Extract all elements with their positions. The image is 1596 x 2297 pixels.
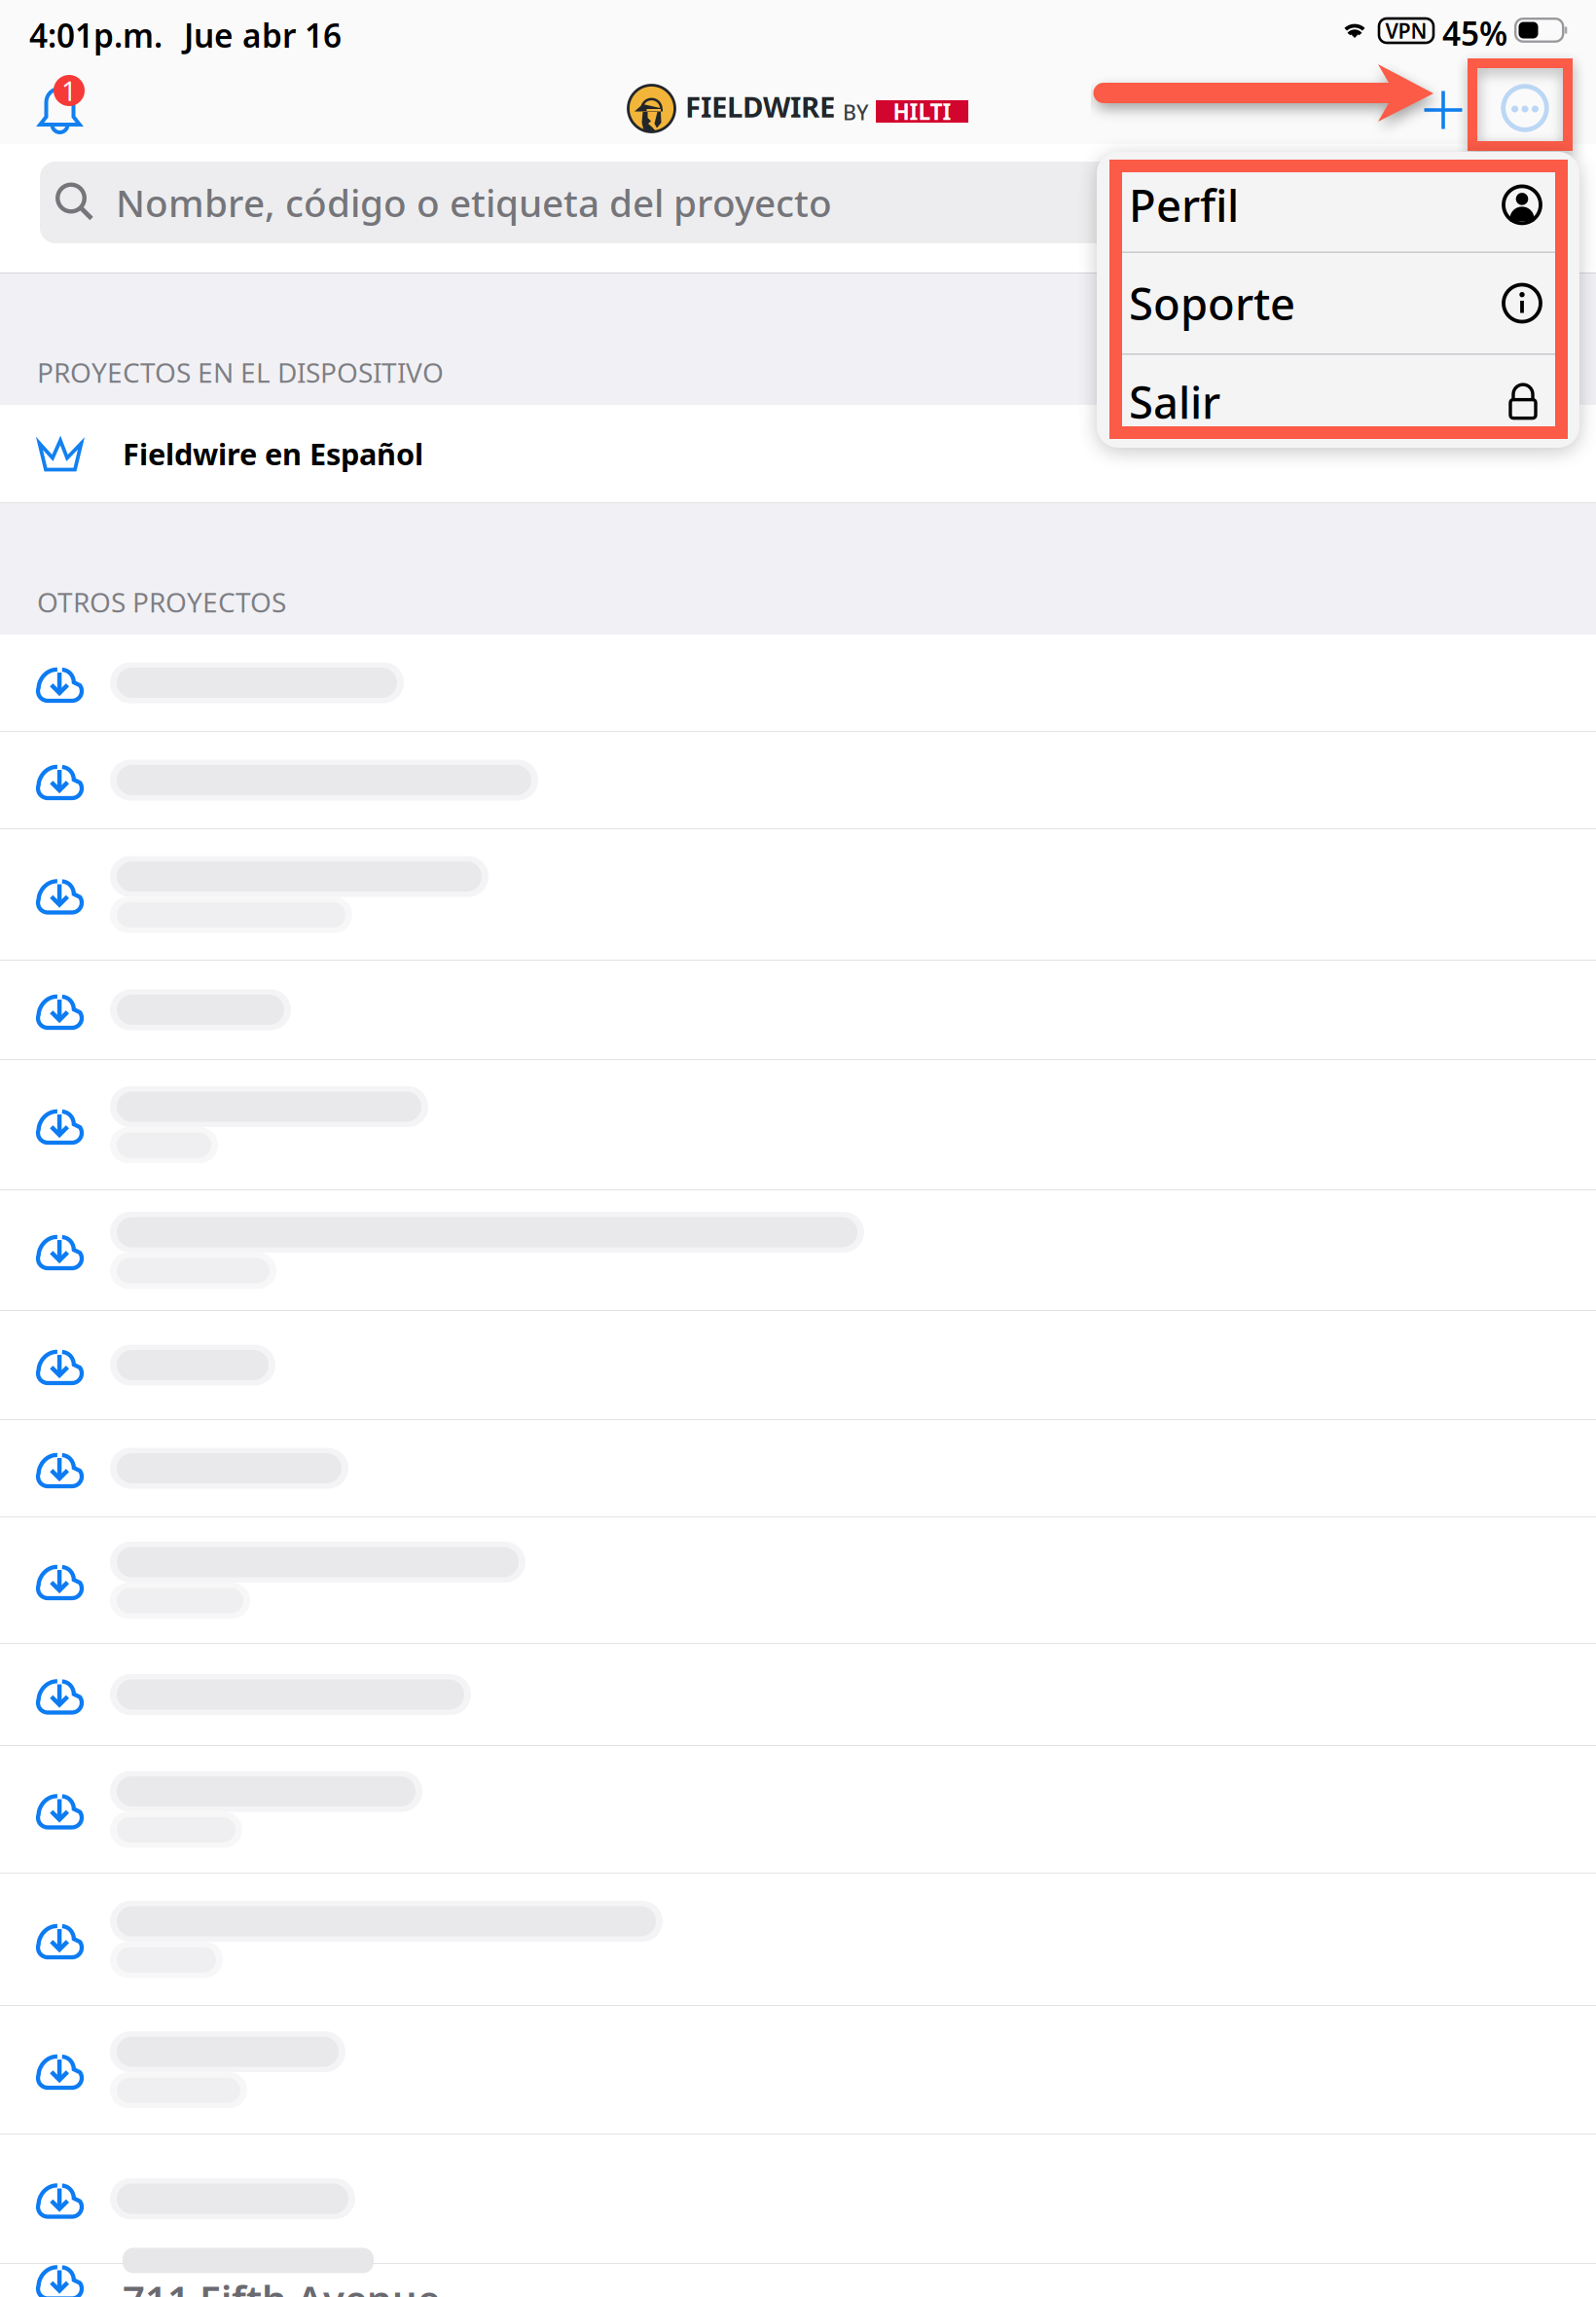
staticText: HILTI xyxy=(893,97,951,126)
staticText: Salir xyxy=(1129,372,1220,431)
staticText: 1 xyxy=(61,72,77,109)
button[interactable] xyxy=(0,961,1596,1060)
staticText: BY xyxy=(843,98,868,126)
button[interactable] xyxy=(0,1874,1596,2006)
button[interactable] xyxy=(0,635,1596,732)
button[interactable]: Salir xyxy=(1122,355,1555,448)
staticText: 711 Fifth Avenue xyxy=(123,2273,440,2297)
staticText: VPN xyxy=(1385,17,1427,44)
staticText: Jue abr 16 xyxy=(184,14,342,57)
button[interactable] xyxy=(0,1517,1596,1644)
button[interactable]: Perfil xyxy=(1122,158,1555,252)
button[interactable] xyxy=(0,1644,1596,1746)
button[interactable]: Notifications xyxy=(38,85,83,135)
staticText: Nombre, código o etiqueta del proyecto xyxy=(116,177,832,227)
staticText: FIELDWIRE xyxy=(685,88,835,126)
staticText: 4:01p.m. xyxy=(29,14,163,57)
button[interactable] xyxy=(0,2006,1596,2134)
button[interactable] xyxy=(0,732,1596,829)
staticText: OTROS PROYECTOS xyxy=(37,584,286,620)
staticText: 45% xyxy=(1442,12,1507,55)
staticText: Perfil xyxy=(1129,175,1239,234)
button[interactable] xyxy=(0,2134,1596,2264)
button[interactable] xyxy=(0,1060,1596,1190)
button[interactable]: 711 Fifth Avenue xyxy=(0,2264,1596,2297)
staticText: Soporte xyxy=(1129,274,1295,332)
button[interactable] xyxy=(0,829,1596,961)
button[interactable]: Fieldwire en Español xyxy=(0,405,1596,503)
staticText: Fieldwire en Español xyxy=(123,434,423,473)
button[interactable] xyxy=(0,1746,1596,1874)
staticText: PROYECTOS EN EL DISPOSITIVO xyxy=(37,354,444,390)
button[interactable]: Add project xyxy=(1424,91,1463,129)
button[interactable] xyxy=(0,1311,1596,1420)
button[interactable]: Soporte xyxy=(1122,253,1555,353)
button[interactable] xyxy=(0,1420,1596,1517)
button[interactable]: More options xyxy=(1501,84,1549,132)
button[interactable] xyxy=(0,1190,1596,1311)
